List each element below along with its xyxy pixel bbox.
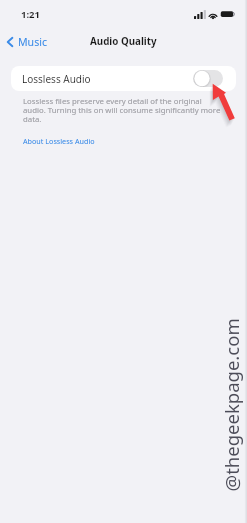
staticText: 1:21 xyxy=(21,8,40,21)
button[interactable]: Lossless Audio xyxy=(11,66,236,91)
button[interactable]: Back to Music xyxy=(4,33,51,51)
staticText: @thegeekpage.com xyxy=(218,317,243,491)
staticText: Lossless Audio xyxy=(22,72,91,86)
staticText: About Lossless Audio xyxy=(23,136,95,146)
button[interactable]: Lossless Audio toggle xyxy=(193,70,223,87)
button[interactable]: About Lossless Audio xyxy=(20,134,98,148)
staticText: Music xyxy=(18,35,48,49)
staticText: Audio Quality xyxy=(90,35,157,48)
staticText: Lossless files preserve every detail of … xyxy=(23,96,222,125)
